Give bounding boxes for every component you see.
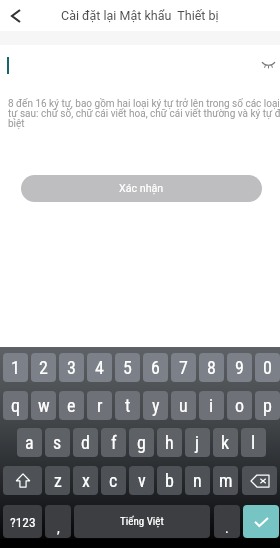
staticText: c (109, 470, 118, 491)
staticText: t (125, 395, 131, 416)
staticText: z (54, 470, 62, 491)
staticText: ?123 (10, 514, 36, 530)
button[interactable]: Backspace (242, 466, 277, 495)
button[interactable]: p (255, 391, 280, 420)
button[interactable]: n (185, 466, 210, 495)
staticText: 5 (123, 357, 132, 378)
button[interactable]: a (17, 428, 42, 457)
staticText: b (165, 470, 174, 491)
staticText: u (179, 395, 188, 416)
button[interactable]: v (129, 466, 154, 495)
staticText: v (138, 470, 146, 491)
staticText: l (251, 432, 256, 453)
staticText: Tiếng Việt (120, 515, 164, 528)
button[interactable]: i (199, 391, 224, 420)
staticText: Xác nhận (119, 182, 164, 195)
button[interactable]: 6 (143, 353, 168, 382)
button[interactable]: k (213, 428, 238, 457)
staticText: g (137, 432, 146, 453)
button[interactable]: q (3, 391, 28, 420)
button[interactable]: j (185, 428, 210, 457)
staticText: q (11, 395, 21, 416)
staticText: 0 (263, 357, 272, 378)
button[interactable]: Enter (243, 505, 279, 538)
button[interactable]: y (143, 391, 168, 420)
staticText: 1 (11, 357, 20, 378)
staticText: n (193, 470, 202, 491)
button[interactable]: b (157, 466, 182, 495)
button[interactable]: Tiếng Việt (74, 505, 210, 538)
button[interactable]: 1 (3, 353, 28, 382)
staticText: 7 (179, 357, 188, 378)
staticText: x (82, 470, 90, 491)
staticText: 8 (207, 357, 216, 378)
staticText: 4 (95, 357, 104, 378)
button[interactable]: f (101, 428, 126, 457)
button[interactable]: t (115, 391, 140, 420)
staticText: 2 (39, 357, 48, 378)
staticText: d (81, 432, 90, 453)
staticText: 3 (67, 357, 76, 378)
button[interactable]: 7 (171, 353, 196, 382)
staticText: r (97, 395, 103, 416)
staticText: s (53, 432, 62, 453)
button[interactable]: Xác nhận (21, 175, 262, 202)
staticText: 9 (235, 357, 244, 378)
button[interactable]: e (59, 391, 84, 420)
staticText: i (209, 395, 214, 416)
button[interactable]: 4 (87, 353, 112, 382)
button[interactable]: ?123 (3, 505, 42, 538)
staticText: k (221, 432, 230, 453)
staticText: tự sau: chữ số, chữ cái viết hoa, chữ cá… (8, 108, 280, 120)
staticText: biệt (8, 118, 280, 130)
button[interactable]: c (101, 466, 126, 495)
staticText: , (57, 520, 60, 536)
staticText: 6 (151, 357, 160, 378)
button[interactable]: Back (3, 3, 29, 29)
button[interactable]: 0 (255, 353, 280, 382)
staticText: a (25, 432, 34, 453)
staticText: Cài đặt lại Mật khẩu Thiết bị (61, 8, 219, 23)
button[interactable]: d (73, 428, 98, 457)
button[interactable]: 5 (115, 353, 140, 382)
button[interactable]: Show password (257, 53, 279, 75)
staticText: m (219, 470, 233, 491)
staticText: f (111, 432, 117, 453)
button[interactable]: z (45, 466, 70, 495)
staticText: y (152, 395, 160, 416)
button[interactable]: x (73, 466, 98, 495)
button[interactable]: 3 (59, 353, 84, 382)
staticText: 8 đến 16 ký tự, bao gồm hai loại ký tự t… (8, 98, 280, 110)
button[interactable]: o (227, 391, 252, 420)
button[interactable]: u (171, 391, 196, 420)
staticText: e (67, 395, 76, 416)
staticText: w (38, 395, 50, 416)
staticText: p (263, 395, 272, 416)
button[interactable]: 8 (199, 353, 224, 382)
button[interactable]: 2 (31, 353, 56, 382)
button[interactable]: m (213, 466, 238, 495)
button[interactable]: r (87, 391, 112, 420)
staticText: j (195, 432, 200, 453)
button[interactable]: s (45, 428, 70, 457)
staticText: . (225, 520, 229, 536)
button[interactable]: 9 (227, 353, 252, 382)
staticText: o (235, 395, 245, 416)
button[interactable]: Shift (3, 466, 42, 495)
button[interactable]: Comma (45, 505, 71, 538)
button[interactable]: l (241, 428, 266, 457)
button[interactable]: h (157, 428, 182, 457)
button[interactable]: Period (214, 505, 240, 538)
button[interactable]: w (31, 391, 56, 420)
button[interactable]: g (129, 428, 154, 457)
staticText: h (165, 432, 174, 453)
